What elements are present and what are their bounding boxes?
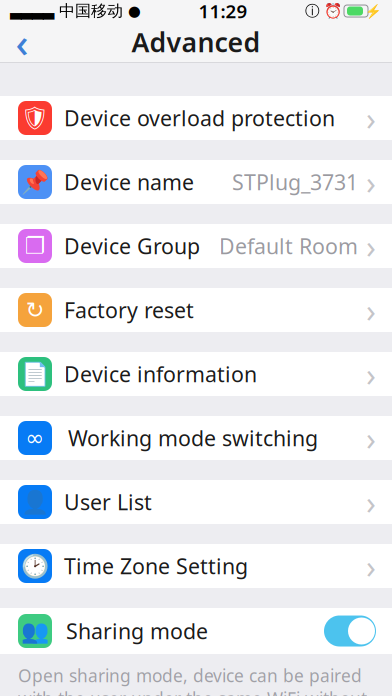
staticText: Device information (64, 360, 257, 388)
staticText: STPlug_3731 (232, 168, 358, 196)
staticText: 👤 (21, 489, 49, 515)
staticText: Sharing mode (66, 617, 208, 645)
staticText: › (366, 225, 376, 267)
button[interactable]: 📄 (0, 352, 392, 396)
staticText: ⓘ ⏰ (305, 2, 342, 20)
staticText: Working mode switching (68, 424, 318, 452)
staticText: Device name (64, 168, 194, 196)
button[interactable]: Back (0, 22, 44, 62)
button[interactable]: ↻ (0, 288, 392, 332)
button[interactable]: 📌 (0, 160, 392, 204)
staticText: ● (128, 3, 141, 19)
staticText: ▃▃▃▃ (10, 3, 54, 19)
staticText: 中国移动 (54, 1, 128, 21)
staticText: Device Group (64, 232, 200, 260)
staticText: › (366, 97, 376, 139)
staticText: Time Zone Setting (64, 552, 248, 580)
button[interactable]: 🕑 (0, 544, 392, 588)
staticText: ‹ (15, 15, 28, 68)
staticText: ∞ (25, 425, 44, 451)
button[interactable]: 👤 (0, 480, 392, 524)
staticText: › (366, 289, 376, 331)
button[interactable]: 👥 (0, 608, 392, 654)
staticText: ↻ (25, 297, 44, 323)
staticText: Advanced (131, 24, 260, 60)
staticText: ⚡ (365, 3, 382, 19)
staticText: ❐ (25, 233, 45, 259)
staticText: 🕑 (21, 553, 49, 579)
staticText: 📌 (21, 169, 49, 195)
staticText: › (366, 545, 376, 587)
staticText: Open sharing mode, device can be paired … (18, 664, 372, 696)
staticText: › (366, 417, 376, 459)
staticText: 11:29 (198, 0, 247, 23)
staticText: › (366, 481, 376, 523)
button[interactable]: ∞ (0, 416, 392, 460)
staticText: Factory reset (64, 296, 194, 324)
button[interactable]: 🛡 (0, 96, 392, 140)
button[interactable]: ❐ (0, 224, 392, 268)
staticText: 👥 (21, 618, 49, 644)
staticText: 📄 (21, 361, 49, 387)
staticText: Device overload protection (64, 104, 335, 132)
staticText: Default Room (219, 232, 358, 260)
staticText: › (366, 161, 376, 203)
staticText: User List (64, 488, 152, 516)
staticText: 🛡 (20, 105, 49, 131)
staticText: › (366, 353, 376, 395)
